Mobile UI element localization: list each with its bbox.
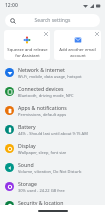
staticText: Security & location	[18, 199, 64, 206]
staticText: Bluetooth, driving mode, NFC	[18, 93, 74, 98]
staticText: Wallpaper, sleep, font size	[18, 150, 67, 155]
staticText: for Assistant	[15, 53, 40, 59]
staticText: 12:00	[5, 2, 18, 9]
button[interactable]: Sound	[0, 158, 105, 177]
staticText: Network & internet	[18, 66, 65, 73]
button[interactable]: Connected devices	[0, 82, 105, 101]
staticText: Squeeze and release	[7, 47, 48, 53]
staticText: Connected devices	[18, 85, 64, 92]
button[interactable]: Dismiss	[93, 30, 101, 38]
button[interactable]: Home	[38, 210, 68, 212]
button[interactable]: Dismiss	[4, 30, 50, 60]
button[interactable]: Dismiss	[54, 30, 101, 60]
staticText: Volume, vibration, Do Not Disturb	[18, 169, 82, 174]
staticText: 30% used - 24.22 GB free	[18, 188, 65, 193]
button[interactable]: Storage	[0, 177, 105, 196]
staticText: Storage	[18, 180, 37, 187]
button[interactable]: Search settings	[5, 14, 100, 27]
button[interactable]: Apps & notifications	[0, 101, 105, 120]
button[interactable]: Dismiss	[42, 30, 50, 38]
staticText: Sound	[18, 161, 34, 168]
staticText: Add another email	[59, 47, 96, 53]
staticText: Search settings	[16, 17, 89, 24]
staticText: Permissions, default apps	[18, 112, 67, 117]
staticText: Battery	[18, 123, 36, 130]
staticText: Play Protect, screen lock	[18, 207, 64, 212]
button[interactable]: Display	[0, 139, 105, 158]
button[interactable]: Network & internet	[0, 63, 105, 82]
staticText: Wi-Fi, mobile, data usage, hotspot	[18, 74, 82, 79]
staticText: Apps & notifications	[18, 104, 67, 111]
staticText: account	[70, 53, 86, 59]
button[interactable]: Battery	[0, 120, 105, 139]
staticText: 44% - Should last until about 9:15 AM	[18, 131, 88, 136]
staticText: Display	[18, 142, 36, 149]
button[interactable]: Security & location	[0, 196, 105, 215]
